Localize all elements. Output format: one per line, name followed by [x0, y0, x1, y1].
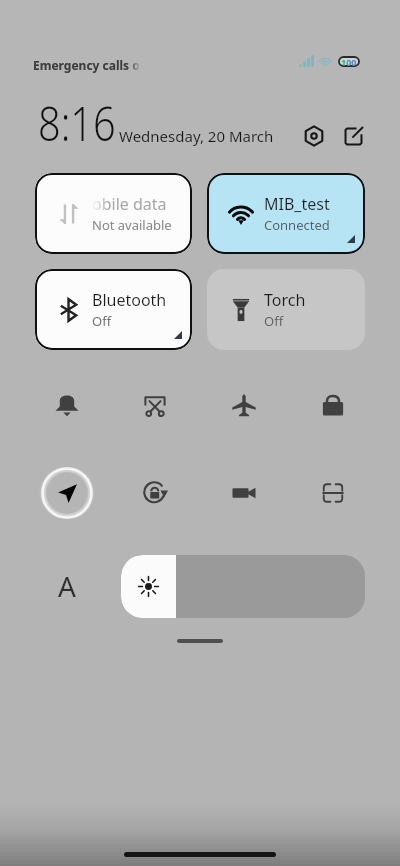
staticText: Off: [92, 312, 112, 330]
staticText: Emergency calls o: [33, 57, 140, 73]
staticText: A: [58, 567, 76, 605]
staticText: obile data: [92, 193, 167, 215]
button[interactable]: Silent mode: [41, 379, 93, 431]
button[interactable]: Bluetooth: [35, 269, 192, 350]
staticText: Torch: [264, 289, 306, 311]
button[interactable]: Screen lock: [307, 379, 359, 431]
staticText: 8:16: [38, 91, 116, 155]
button[interactable]: Auto brightness: [41, 560, 93, 612]
button[interactable]: Airplane mode: [218, 379, 270, 431]
button[interactable]: Screen recorder: [218, 467, 270, 519]
button[interactable]: Edit tiles: [336, 119, 370, 153]
staticText: 100: [341, 56, 357, 67]
staticText: MIB_test: [264, 193, 330, 215]
button[interactable]: Location: [39, 467, 95, 519]
staticText: Not available: [92, 216, 172, 234]
staticText: Connected: [264, 216, 330, 234]
staticText: Off: [264, 312, 284, 330]
button[interactable]: obile data: [35, 173, 192, 254]
staticText: Wednesday, 20 March: [119, 126, 274, 146]
button[interactable]: Settings: [297, 119, 331, 153]
staticText: Bluetooth: [92, 289, 167, 311]
button[interactable]: Torch: [207, 269, 365, 350]
button[interactable]: Brightness: [121, 555, 365, 618]
button[interactable]: MIB_test: [207, 173, 365, 254]
button[interactable]: Screenshot: [129, 379, 181, 431]
button[interactable]: Scanner: [307, 467, 359, 519]
button[interactable]: Auto rotate: [129, 467, 181, 519]
